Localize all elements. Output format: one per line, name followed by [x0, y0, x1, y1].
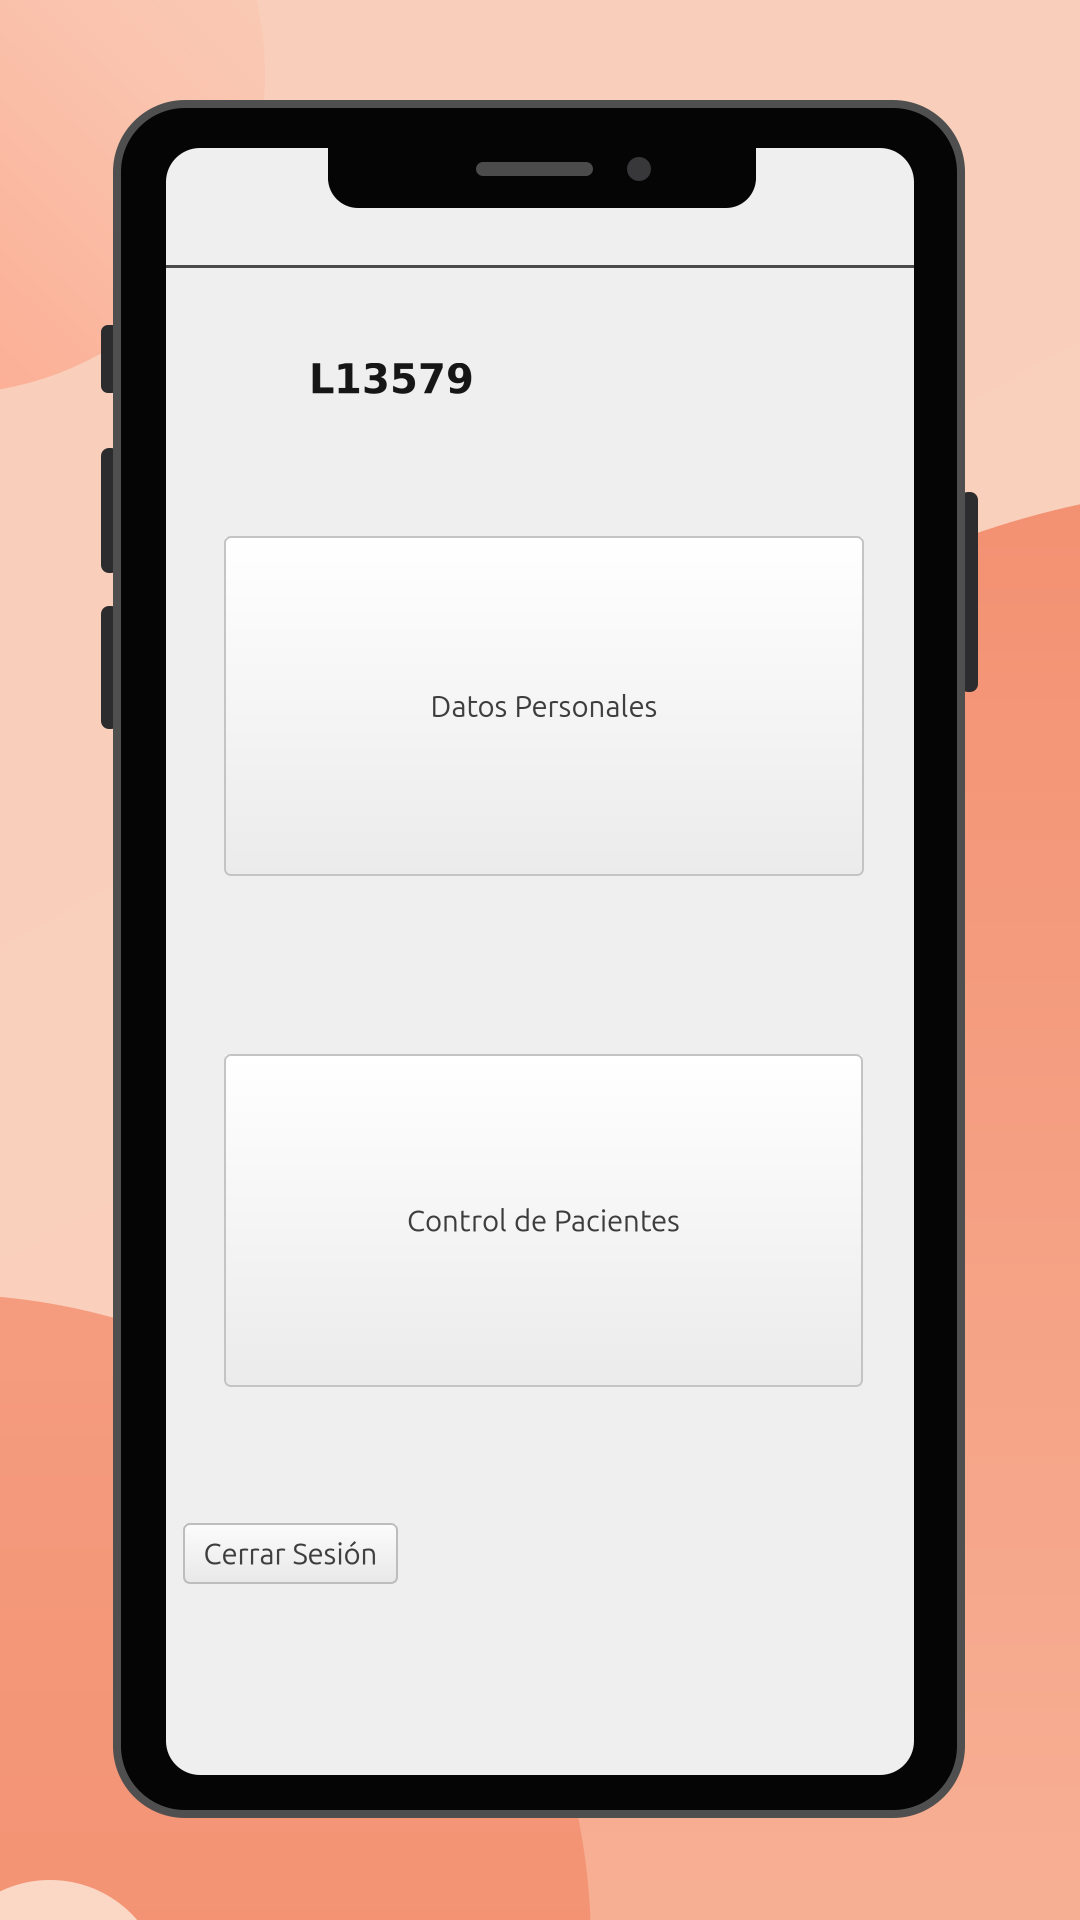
staticText: Control de Pacientes [407, 1204, 680, 1237]
button[interactable]: Cerrar Sesión [184, 1524, 397, 1583]
button[interactable]: Datos Personales [225, 537, 863, 875]
staticText: L13579 [309, 356, 474, 403]
button[interactable]: Control de Pacientes [225, 1055, 862, 1386]
staticText: Datos Personales [430, 690, 657, 722]
staticText: Cerrar Sesión [203, 1537, 377, 1570]
